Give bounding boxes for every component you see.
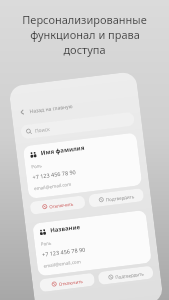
staticText: Роль xyxy=(40,240,52,247)
button[interactable]: Название xyxy=(32,210,152,276)
staticText: Отключить xyxy=(49,200,74,209)
button[interactable]: Подтвердить xyxy=(88,188,144,208)
staticText: Персонализированные xyxy=(22,12,147,27)
staticText: функционал и права xyxy=(30,27,140,42)
staticText: Подтвердить xyxy=(105,193,135,203)
button[interactable]: Поиск xyxy=(25,112,130,139)
staticText: Название xyxy=(50,223,80,235)
staticText: доступа xyxy=(63,42,106,57)
other: Поиск xyxy=(26,128,32,135)
staticText: +7 123 456 78 90 xyxy=(32,168,77,180)
button[interactable]: Отключить xyxy=(29,195,86,215)
button[interactable]: Имя фамилия xyxy=(23,132,142,199)
staticText: +7 123 456 78 90 xyxy=(42,245,86,258)
staticText: Назад на главную xyxy=(29,103,74,115)
button[interactable]: Назад xyxy=(18,92,133,120)
staticText: email@email.com xyxy=(34,181,72,191)
staticText: Имя фамилия xyxy=(40,144,85,157)
button[interactable]: Подтвердить xyxy=(98,265,154,285)
staticText: Подтвердить xyxy=(115,270,144,280)
other: Назад xyxy=(18,108,27,117)
button[interactable]: Отключить xyxy=(39,273,95,292)
staticText: Поиск xyxy=(34,126,50,135)
staticText: email@email.com xyxy=(43,258,81,269)
staticText: Отключить xyxy=(58,278,84,287)
staticText: Роль xyxy=(31,162,42,169)
